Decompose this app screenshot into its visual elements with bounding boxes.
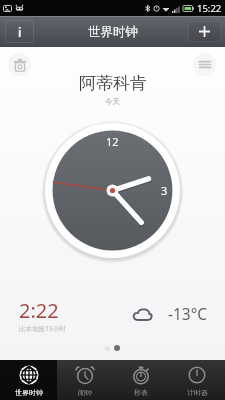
staticText: 计时器 [187,388,208,397]
button[interactable]: 闹钟 [57,360,113,400]
staticText: 2:22 [19,297,59,324]
staticText: 世界时钟 [88,24,138,40]
staticText: 比本地慢13小时 [19,324,66,333]
staticText: 世界时钟 [15,388,43,397]
staticText: -13°C [168,303,208,324]
staticText: 今天 [105,97,120,106]
button[interactable]: 世界时钟 [0,360,57,400]
button[interactable]: List [193,53,216,76]
staticText: 15:22 [197,2,222,15]
button[interactable]: 秒表 [113,360,169,400]
staticText: 秒表 [134,388,148,397]
button[interactable]: 计时器 [169,360,225,400]
button[interactable]: Info [5,20,34,43]
button[interactable]: Delete [8,53,31,76]
staticText: 12 [106,134,119,149]
staticText: 闹钟 [78,388,92,397]
staticText: i [18,24,22,40]
button[interactable]: Add city [188,21,221,42]
staticText: 3 [161,183,168,198]
staticText: 阿蒂科肯 [79,73,147,94]
